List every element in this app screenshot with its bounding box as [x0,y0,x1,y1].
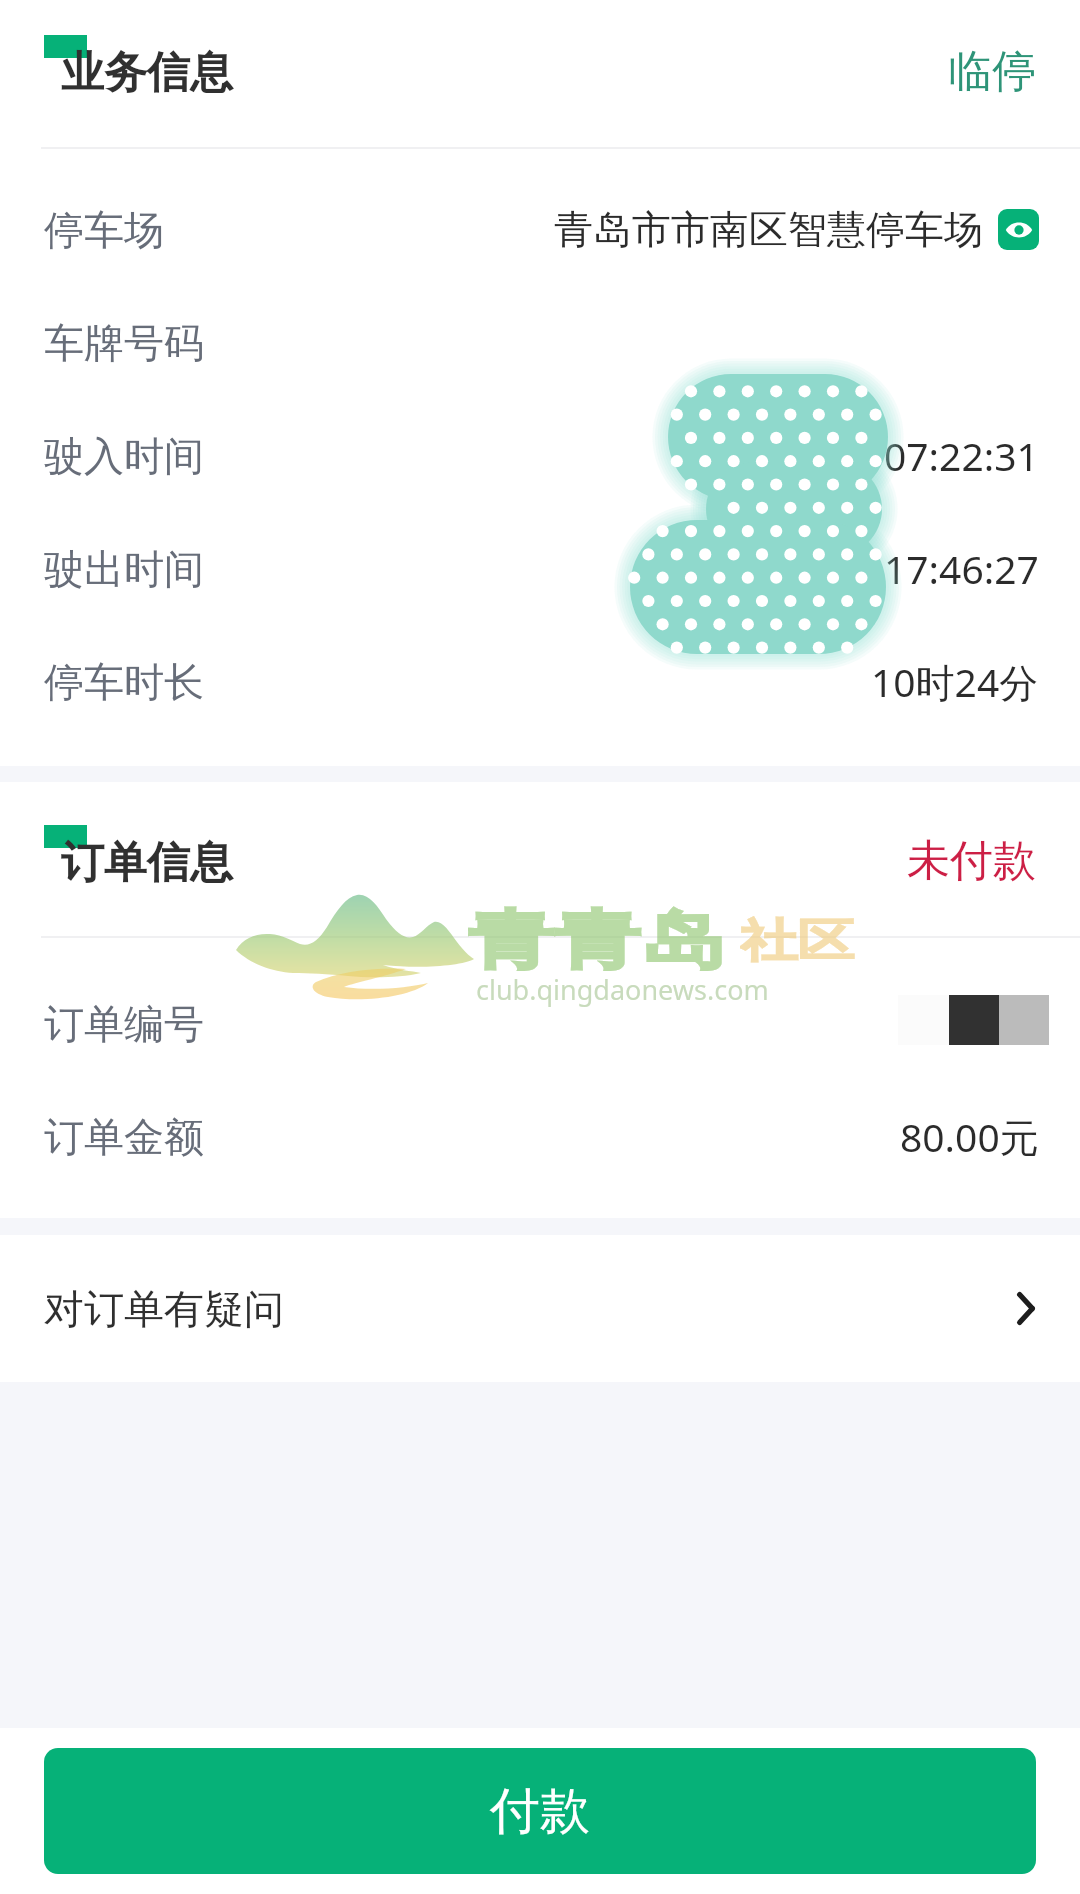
staticText: 订单金额 [44,1112,204,1162]
staticText: 订单编号 [44,999,204,1049]
staticText: 业务信息 [61,46,233,100]
staticText: 80.00元 [900,1110,1039,1163]
button[interactable]: View parking lot details [998,209,1039,250]
staticText: 驶入时间 [44,431,204,481]
staticText: 订单信息 [61,836,233,890]
staticText: 社区 [740,913,854,970]
staticText: 停车场 [44,205,164,255]
staticText: 临停 [948,44,1036,99]
staticText: 10时24分 [871,655,1039,708]
staticText: 17:46:27 [884,542,1039,595]
staticText: 青青岛 [468,901,727,981]
staticText: 青岛市市南区智慧停车场 [554,205,983,254]
staticText: 车牌号码 [44,318,204,368]
button[interactable]: 对订单有疑问 [0,1235,1080,1382]
staticText: 停车时长 [44,657,204,707]
staticText: 07:22:31 [884,429,1039,482]
staticText: 对订单有疑问 [44,1284,284,1334]
staticText: 未付款 [907,834,1036,888]
button[interactable]: 付款 [44,1748,1036,1874]
staticText: 付款 [490,1780,590,1843]
staticText: 驶出时间 [44,544,204,594]
staticText: club.qingdaonews.com [476,971,769,1008]
